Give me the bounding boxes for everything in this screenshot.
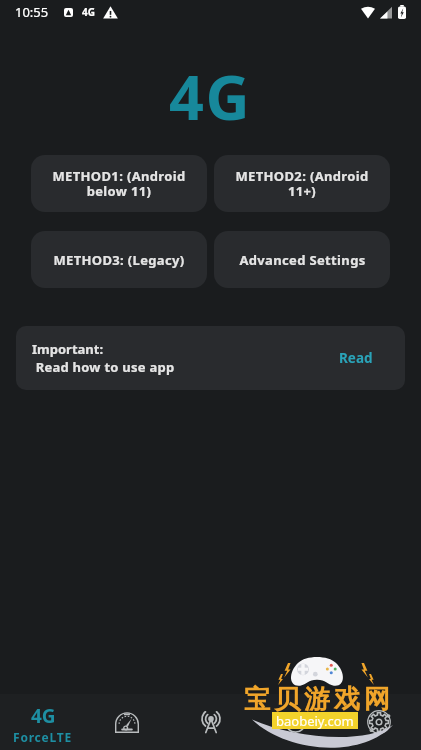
button[interactable]: Important:	[16, 326, 405, 390]
staticText: Read how to use app	[32, 358, 175, 376]
staticText: Read	[339, 349, 373, 367]
staticText: METHOD2: (Android 11+)	[223, 167, 381, 200]
staticText: 4G	[82, 5, 95, 19]
staticText: Important:	[32, 340, 104, 358]
staticText: baobeiy.com	[276, 712, 354, 729]
staticText: Advanced Settings	[239, 251, 366, 269]
button[interactable]: Settings	[337, 694, 421, 750]
button[interactable]: Signal tower	[169, 694, 253, 750]
staticText: 4G	[169, 55, 252, 138]
button[interactable]: 4G	[0, 694, 85, 750]
button[interactable]: Network info	[253, 694, 337, 750]
button[interactable]: Speed test	[85, 694, 169, 750]
staticText: 10:55	[15, 3, 49, 21]
button[interactable]: METHOD3: (Legacy)	[31, 231, 207, 288]
button[interactable]: METHOD1: (Android below 11)	[31, 155, 207, 212]
staticText: 4G	[31, 703, 56, 729]
button[interactable]: Advanced Settings	[214, 231, 390, 288]
staticText: METHOD1: (Android below 11)	[40, 167, 198, 200]
staticText: METHOD3: (Legacy)	[53, 251, 185, 269]
staticText: 宝贝游戏网	[242, 683, 392, 716]
staticText: ForceLTE	[13, 729, 73, 745]
button[interactable]: METHOD2: (Android 11+)	[214, 155, 390, 212]
